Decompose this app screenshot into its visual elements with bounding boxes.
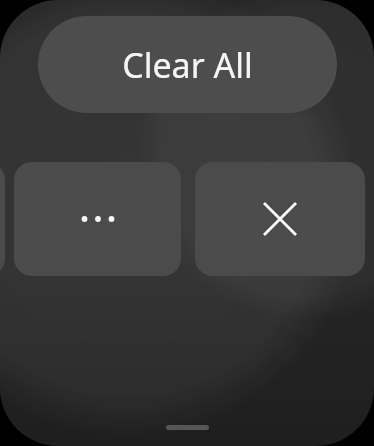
staticText: Clear All xyxy=(122,42,253,88)
button[interactable]: More options xyxy=(14,162,181,276)
button[interactable]: Previous notification xyxy=(0,162,5,276)
button[interactable]: Dismiss xyxy=(195,162,365,276)
button[interactable]: Clear All xyxy=(38,16,337,113)
